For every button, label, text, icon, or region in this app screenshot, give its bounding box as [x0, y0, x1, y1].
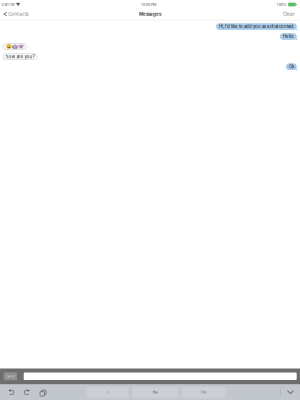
button[interactable]: Redo [19, 385, 34, 400]
button[interactable]: Paste [34, 385, 50, 400]
staticText: Carrier [1, 2, 14, 7]
staticText: I'm [201, 390, 206, 394]
staticText: 😄🤖👾 [6, 44, 24, 49]
button[interactable]: I [87, 387, 129, 398]
button[interactable]: Undo [4, 385, 19, 400]
staticText: 100% [277, 2, 287, 7]
staticText: the [153, 390, 158, 394]
staticText: Send [6, 374, 14, 378]
staticText: I [107, 390, 108, 394]
staticText: Hello [283, 34, 294, 39]
staticText: 10:55 PM [141, 2, 156, 7]
button[interactable]: Clear [280, 9, 300, 19]
button[interactable]: Contacts [0, 9, 31, 19]
staticText: Hi, I'd like to add you as a chat contac… [219, 24, 294, 29]
button[interactable]: I'm [182, 387, 226, 398]
button[interactable]: Hide keyboard [281, 385, 300, 400]
staticText: Clear [283, 11, 295, 17]
button[interactable]: Send [4, 372, 17, 380]
button[interactable]: the [133, 387, 178, 398]
staticText: Ok [289, 64, 294, 69]
staticText: Contacts [8, 11, 28, 17]
staticText: how are you? [6, 54, 35, 59]
staticText: Messages [139, 11, 161, 17]
